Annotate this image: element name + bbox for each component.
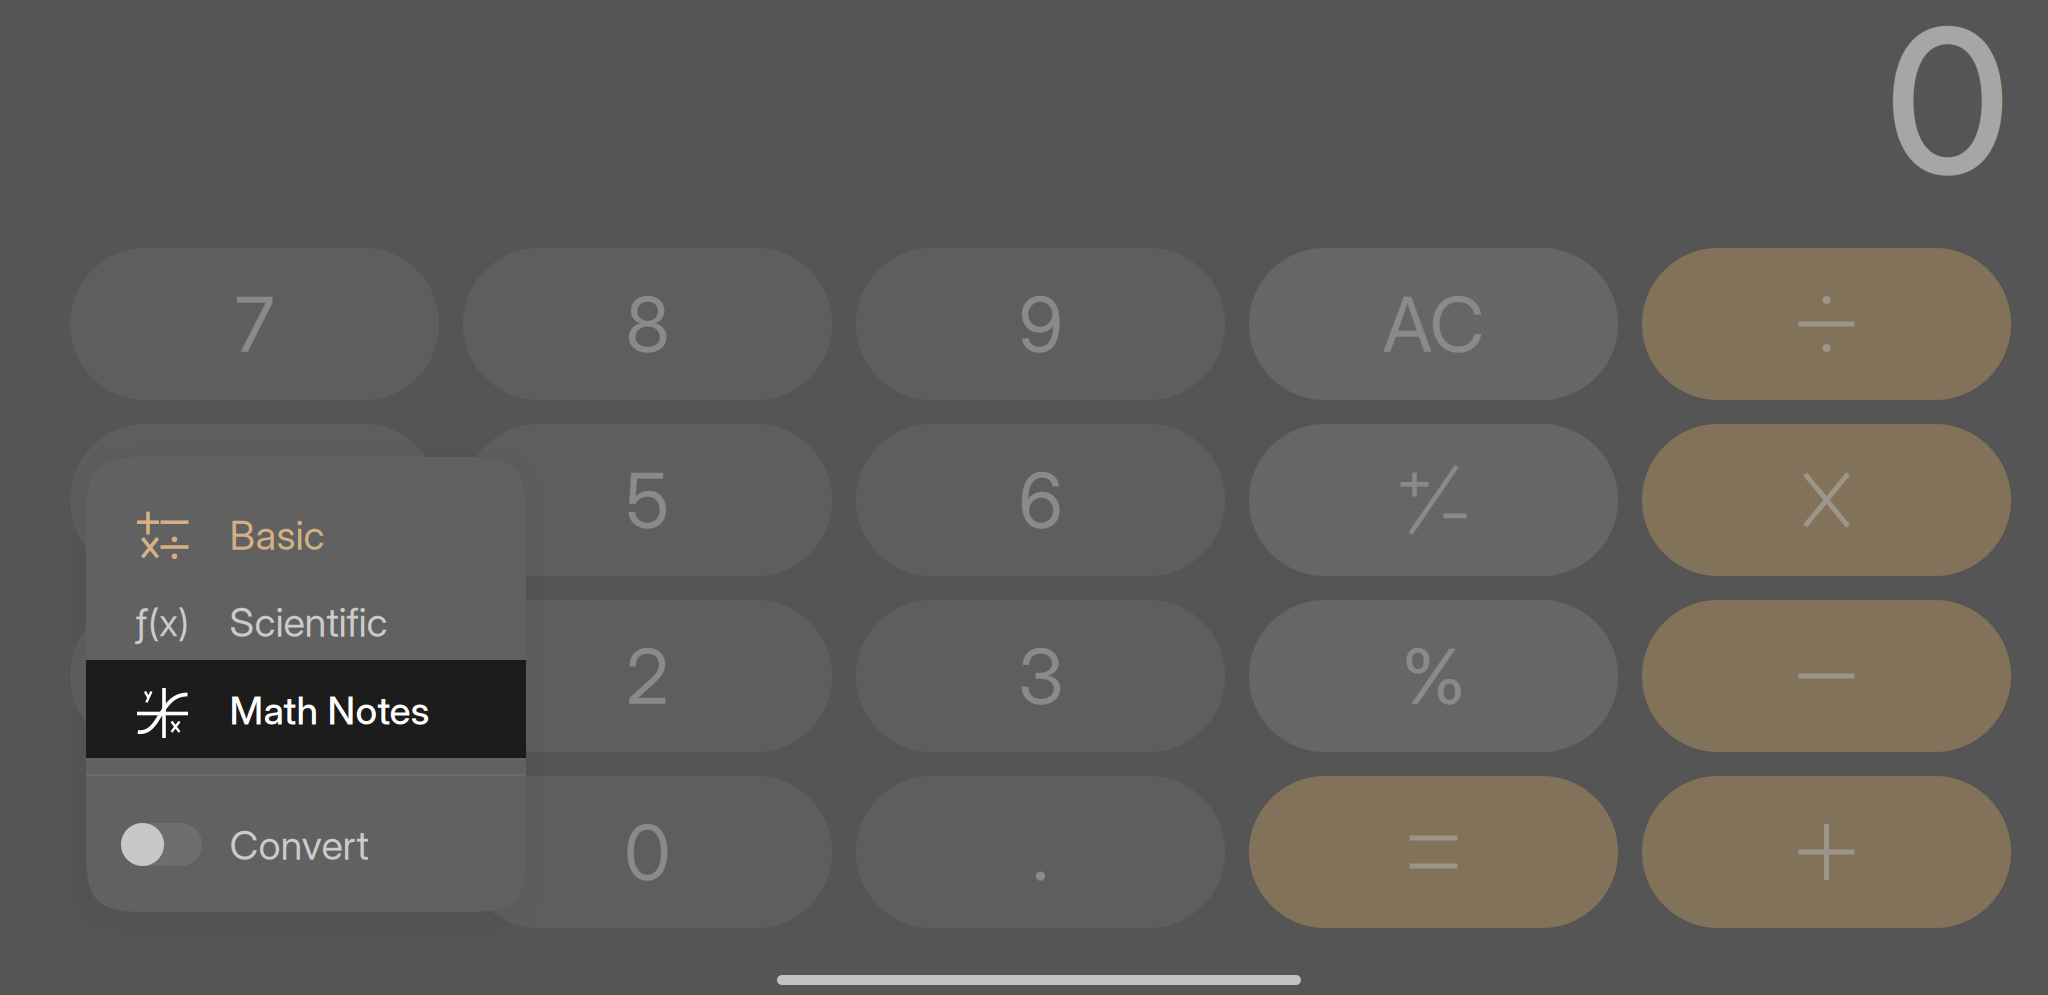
staticText: 3 [1018,630,1063,722]
staticText: Scientific [229,598,387,646]
button[interactable]: 6 [856,424,1225,576]
button[interactable]: ƒ(x) [86,575,526,673]
staticText: 8 [625,278,669,370]
button[interactable]: 4 [70,424,439,576]
staticText: Math Notes [229,687,429,734]
button[interactable]: Equals [1249,776,1618,928]
button[interactable]: 9 [856,248,1225,400]
button[interactable]: Plus [1642,776,2011,928]
button[interactable]: Math Notes [86,660,526,758]
button[interactable]: Basic [86,489,526,587]
button[interactable]: 8 [463,248,832,400]
button[interactable]: % [1249,600,1618,752]
staticText: Basic [229,511,324,559]
staticText: Convert [229,821,368,869]
button[interactable]: AC [1249,248,1618,400]
staticText: 4 [231,454,278,546]
button[interactable]: 5 [463,424,832,576]
staticText: % [1401,630,1465,722]
staticText: 0 [1885,0,2010,222]
staticText: AC [1382,278,1484,370]
staticText: 0 [624,806,671,898]
button[interactable]: Convert [86,795,526,893]
staticText: 9 [1018,278,1062,370]
staticText: . [1032,806,1049,898]
button[interactable]: Multiply [1642,424,2011,576]
button[interactable]: 0 [463,776,832,928]
button[interactable]: 2 [463,600,832,752]
staticText: 6 [1018,454,1062,546]
button[interactable]: 3 [856,600,1225,752]
button[interactable]: Change sign [1249,424,1618,576]
button[interactable]: Divide [1642,248,2011,400]
staticText: ƒ(x) [135,600,189,645]
button[interactable]: Minus [1642,600,2011,752]
button[interactable]: 7 [70,248,439,400]
staticText: 7 [235,278,274,370]
staticText: 1 [240,630,268,722]
staticText: 2 [626,630,669,722]
staticText: 5 [625,454,669,546]
button[interactable]: 1 [70,600,439,752]
